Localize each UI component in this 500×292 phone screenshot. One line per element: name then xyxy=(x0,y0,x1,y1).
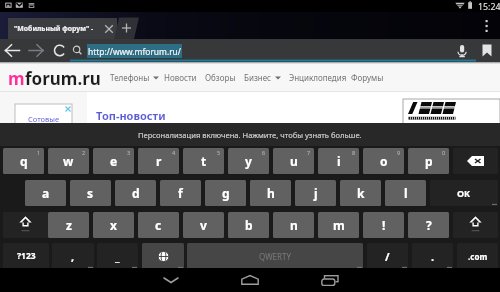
button[interactable]: Shift xyxy=(3,212,48,238)
button[interactable]: t xyxy=(183,148,224,174)
button[interactable]: Новости xyxy=(164,62,197,92)
staticText: "Мобильный форум" - м… xyxy=(14,24,100,33)
staticText: 7 xyxy=(307,149,311,156)
button[interactable]: b xyxy=(228,212,269,238)
button[interactable]: Backspace xyxy=(453,148,498,174)
staticText: forum.ru xyxy=(25,67,101,90)
button[interactable]: New tab xyxy=(114,17,140,39)
button[interactable]: Forward xyxy=(25,39,46,62)
staticText: x xyxy=(110,217,117,233)
button[interactable]: _ xyxy=(97,243,138,269)
button[interactable]: d xyxy=(115,180,156,206)
button[interactable]: q xyxy=(3,148,44,174)
staticText: 1 xyxy=(37,149,41,156)
button[interactable]: v xyxy=(183,212,224,238)
staticText: z xyxy=(66,217,72,233)
button[interactable]: .com xyxy=(457,243,498,269)
button[interactable]: o xyxy=(363,148,404,174)
button[interactable]: More options xyxy=(475,15,497,37)
staticText: Телефоны xyxy=(110,72,150,83)
button[interactable]: Shift xyxy=(453,212,498,238)
button[interactable]: c xyxy=(138,212,179,238)
button[interactable]: ?123 xyxy=(3,243,49,269)
button[interactable]: QWERTY xyxy=(187,243,363,269)
button[interactable]: ? xyxy=(408,212,449,238)
button[interactable]: OK xyxy=(430,180,498,206)
staticText: 4 xyxy=(172,149,176,156)
button[interactable]: Back xyxy=(2,39,23,62)
button[interactable]: j xyxy=(295,180,336,206)
staticText: _ xyxy=(115,249,120,264)
staticText: Персонализация включена. Нажмите, чтобы … xyxy=(138,130,362,140)
staticText: 8 xyxy=(352,149,356,156)
button[interactable]: p xyxy=(408,148,449,174)
staticText: m xyxy=(8,67,25,90)
staticText: Новости xyxy=(164,72,197,83)
button[interactable]: l xyxy=(385,180,426,206)
staticText: d xyxy=(132,185,140,201)
staticText: j xyxy=(314,185,318,201)
staticText: 15:24 xyxy=(478,1,500,13)
staticText: / xyxy=(385,249,390,264)
staticText: o xyxy=(380,153,388,169)
staticText: .com xyxy=(468,251,488,262)
staticText: http://www.mforum.ru/ xyxy=(88,46,181,57)
button[interactable]: Change keyboard xyxy=(142,243,184,269)
button[interactable]: Close tab xyxy=(99,18,118,39)
button[interactable]: i xyxy=(318,148,359,174)
button[interactable]: s xyxy=(70,180,111,206)
button[interactable]: , xyxy=(52,243,94,269)
button[interactable]: Телефоны xyxy=(110,62,159,92)
button[interactable]: Персонализация включена. Нажмите, чтобы … xyxy=(0,123,500,146)
button[interactable]: g xyxy=(205,180,246,206)
button[interactable]: Reload xyxy=(49,39,70,62)
staticText: b xyxy=(245,217,253,233)
button[interactable]: http://www.mforum.ru/ xyxy=(87,44,182,58)
button[interactable]: e xyxy=(93,148,134,174)
button[interactable]: / xyxy=(367,243,408,269)
button[interactable]: Home xyxy=(233,268,267,292)
button[interactable]: f xyxy=(160,180,201,206)
staticText: n xyxy=(290,217,298,233)
staticText: Обзоры xyxy=(205,72,236,83)
button[interactable]: Бизнес xyxy=(244,62,281,92)
button[interactable]: Voice search xyxy=(452,39,472,62)
staticText: q xyxy=(20,153,28,169)
button[interactable]: Форумы xyxy=(351,62,384,92)
button[interactable]: u xyxy=(273,148,314,174)
staticText: , xyxy=(71,249,75,264)
button[interactable]: Hide keyboard xyxy=(154,268,188,292)
staticText: f xyxy=(178,185,183,201)
button[interactable]: n xyxy=(273,212,314,238)
button[interactable]: Bookmark xyxy=(477,39,497,62)
staticText: 6 xyxy=(262,149,266,156)
button[interactable]: Обзоры xyxy=(205,62,236,92)
button[interactable]: r xyxy=(138,148,179,174)
staticText: l xyxy=(404,185,408,201)
button[interactable]: x xyxy=(93,212,134,238)
button[interactable]: h xyxy=(250,180,291,206)
button[interactable]: a xyxy=(25,180,66,206)
staticText: g xyxy=(222,185,230,201)
button[interactable]: . xyxy=(412,243,453,269)
staticText: v xyxy=(200,217,207,233)
staticText: Энциклопедия xyxy=(289,72,347,83)
button[interactable]: "Мобильный форум" - м… xyxy=(8,18,117,39)
staticText: k xyxy=(357,185,365,201)
staticText: e xyxy=(110,153,118,169)
button[interactable]: m xyxy=(318,212,359,238)
button[interactable]: k xyxy=(340,180,381,206)
staticText: OK xyxy=(457,187,471,199)
staticText: w xyxy=(63,153,74,169)
button[interactable]: z xyxy=(48,212,89,238)
staticText: s xyxy=(87,185,94,201)
button[interactable]: w xyxy=(48,148,89,174)
button[interactable]: Энциклопедия xyxy=(289,62,347,92)
staticText: a xyxy=(42,185,50,201)
button[interactable]: Recent apps xyxy=(313,268,347,292)
staticText: h xyxy=(267,185,275,201)
button[interactable]: y xyxy=(228,148,269,174)
staticText: t xyxy=(201,153,207,169)
button[interactable]: ! xyxy=(363,212,404,238)
staticText: 2 xyxy=(82,149,86,156)
